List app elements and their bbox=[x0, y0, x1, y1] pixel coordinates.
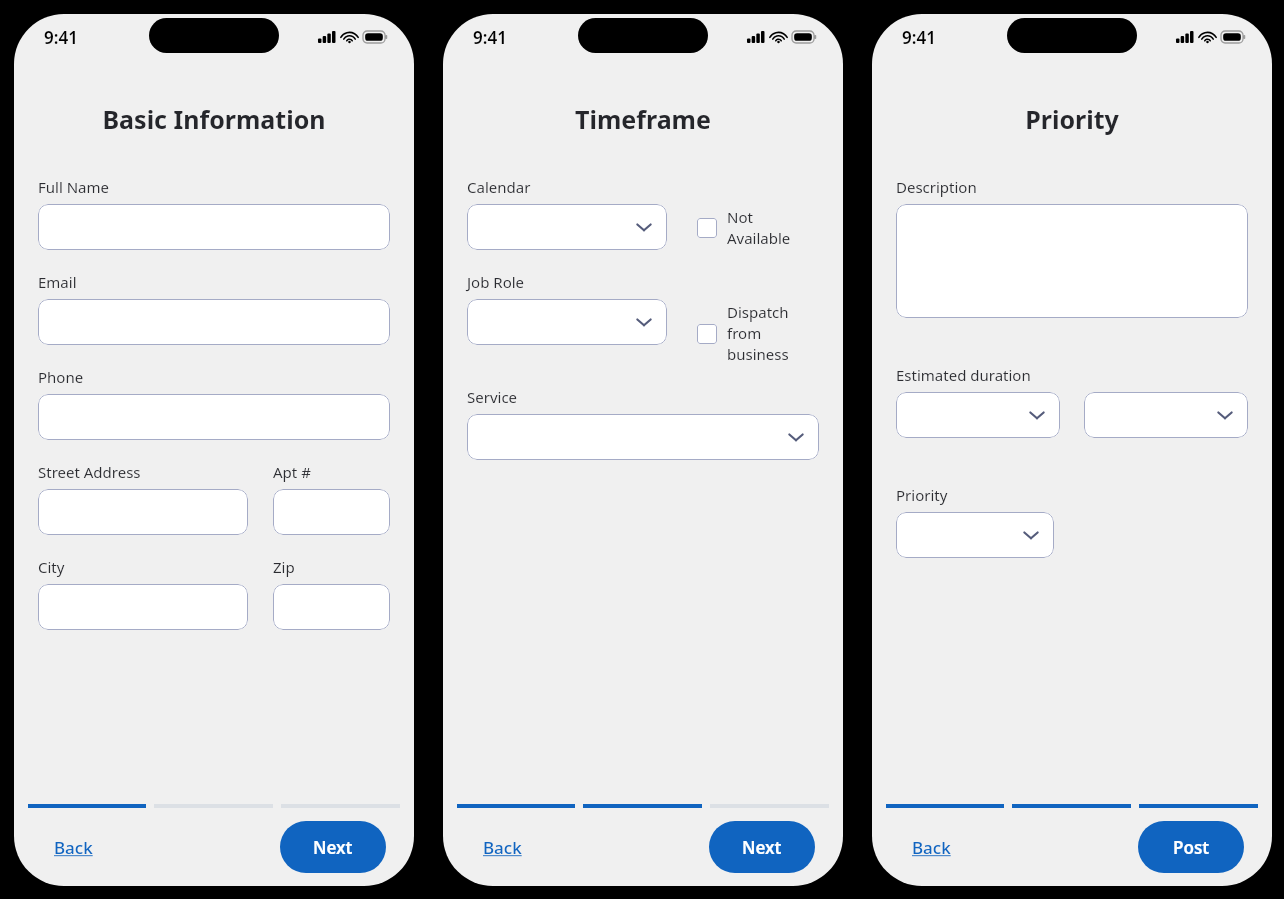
staticText: Estimated duration bbox=[896, 365, 1031, 385]
staticText: Calendar bbox=[467, 177, 531, 197]
staticText: Full Name bbox=[38, 177, 109, 197]
staticText: Zip bbox=[273, 557, 295, 577]
button[interactable] bbox=[896, 204, 1248, 318]
button[interactable]: Post bbox=[1138, 821, 1244, 873]
staticText: Post bbox=[1173, 836, 1210, 859]
button[interactable]: Back bbox=[910, 830, 953, 865]
button[interactable] bbox=[1084, 392, 1248, 438]
staticText: Description bbox=[896, 177, 977, 197]
staticText: Dispatch from business bbox=[727, 302, 819, 365]
staticText: 9:41 bbox=[902, 26, 936, 49]
staticText: 9:41 bbox=[44, 26, 78, 49]
staticText: Email bbox=[38, 272, 77, 292]
button[interactable]: Next bbox=[709, 821, 815, 873]
staticText: Apt # bbox=[273, 462, 311, 482]
staticText: Next bbox=[742, 836, 782, 859]
staticText: Job Role bbox=[467, 272, 525, 292]
staticText: Not Available bbox=[727, 207, 819, 249]
staticText: Priority bbox=[896, 485, 948, 505]
button[interactable] bbox=[38, 489, 248, 535]
button[interactable]: Not Available bbox=[697, 207, 819, 249]
button[interactable] bbox=[467, 299, 667, 345]
staticText: Back bbox=[54, 836, 93, 859]
button[interactable] bbox=[38, 584, 248, 630]
button[interactable] bbox=[38, 204, 390, 250]
staticText: Phone bbox=[38, 367, 84, 387]
staticText: Timeframe bbox=[443, 102, 843, 136]
button[interactable] bbox=[467, 414, 819, 460]
button[interactable] bbox=[38, 394, 390, 440]
staticText: Service bbox=[467, 387, 518, 407]
button[interactable]: Next bbox=[280, 821, 386, 873]
button[interactable]: Dispatch from business bbox=[697, 302, 819, 365]
staticText: Back bbox=[483, 836, 522, 859]
button[interactable] bbox=[896, 392, 1060, 438]
staticText: 9:41 bbox=[473, 26, 507, 49]
button[interactable] bbox=[896, 512, 1054, 558]
staticText: City bbox=[38, 557, 65, 577]
staticText: Basic Information bbox=[14, 102, 414, 136]
button[interactable]: Back bbox=[481, 830, 524, 865]
button[interactable] bbox=[273, 584, 390, 630]
button[interactable] bbox=[38, 299, 390, 345]
button[interactable]: Back bbox=[52, 830, 95, 865]
staticText: Priority bbox=[872, 102, 1272, 136]
staticText: Street Address bbox=[38, 462, 141, 482]
button[interactable] bbox=[273, 489, 390, 535]
staticText: Next bbox=[313, 836, 353, 859]
button[interactable] bbox=[467, 204, 667, 250]
staticText: Back bbox=[912, 836, 951, 859]
